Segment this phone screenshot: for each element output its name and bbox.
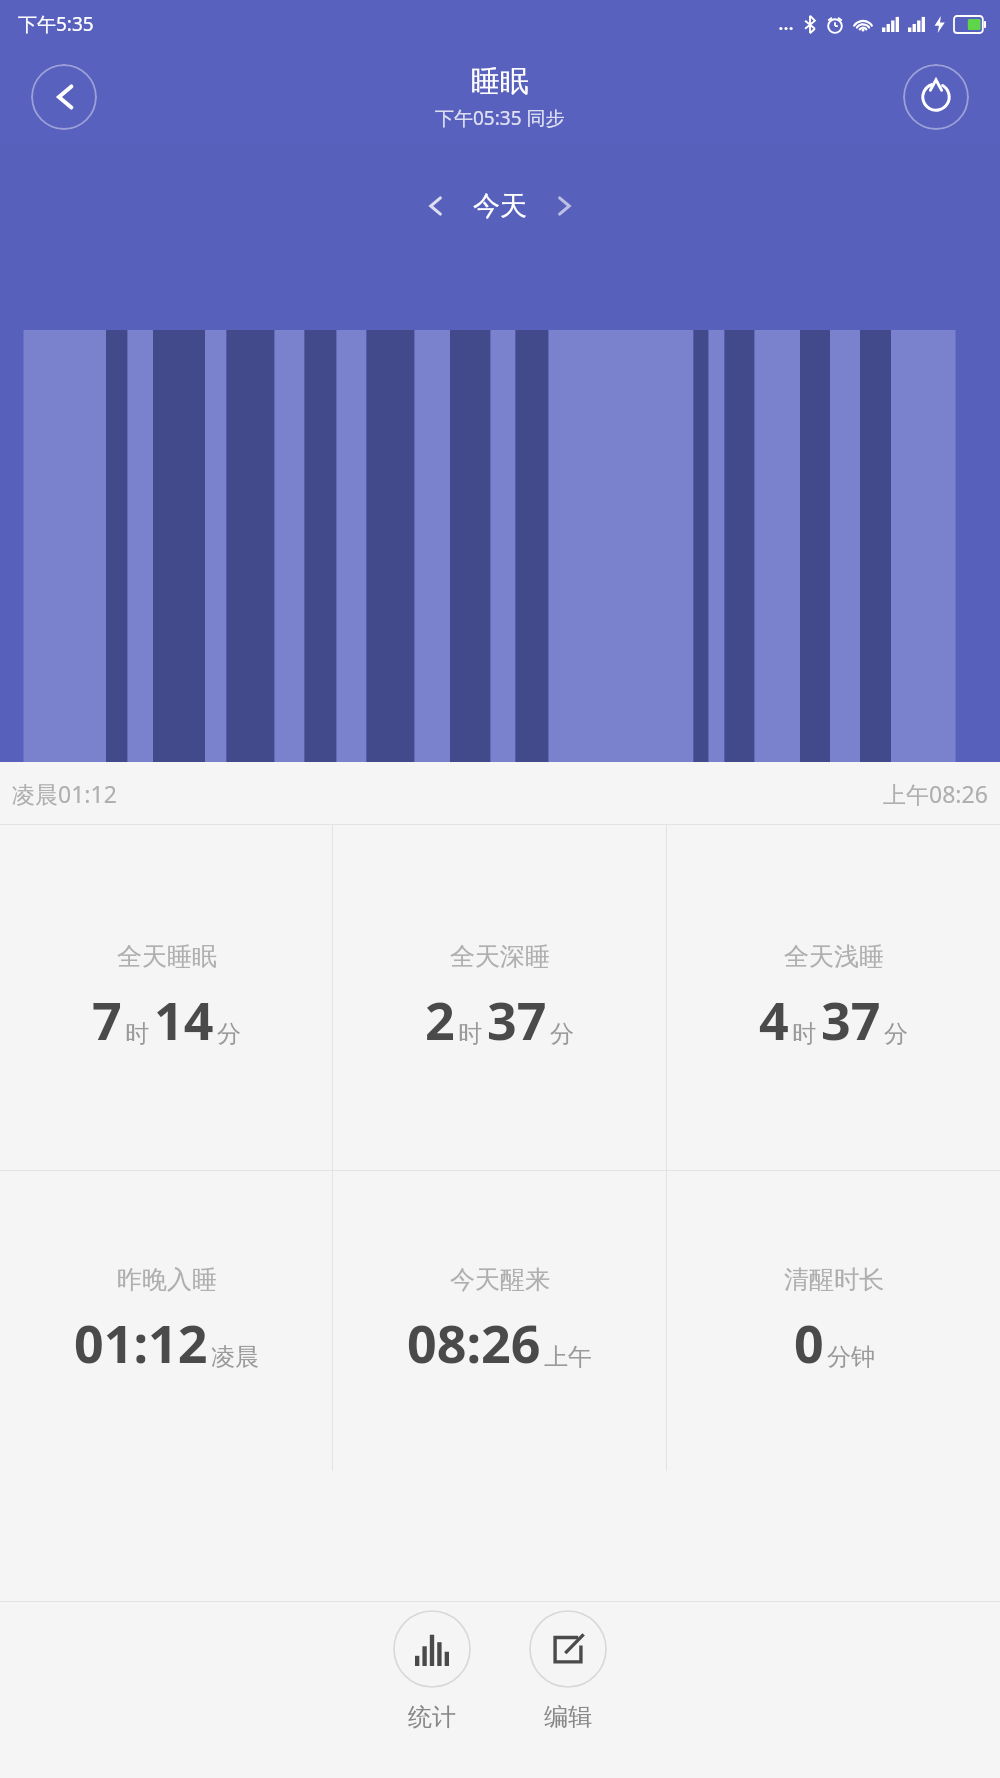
staticText: 时 (792, 1019, 816, 1049)
staticText: 上午 (544, 1342, 592, 1372)
staticText: 今天醒来 (450, 1264, 550, 1295)
staticText: 37 (821, 984, 881, 1055)
button[interactable]: Next day (541, 183, 587, 229)
staticText: 凌晨 (211, 1342, 259, 1372)
staticText: 今天 (473, 189, 527, 223)
button[interactable]: 今天醒来 (333, 1171, 666, 1471)
staticText: 全天深睡 (450, 941, 550, 972)
button[interactable]: Previous day (413, 183, 459, 229)
staticText: 睡眠 (471, 63, 529, 100)
button[interactable]: 昨晚入睡 (0, 1171, 332, 1471)
button[interactable]: 全天睡眠 (0, 825, 332, 1170)
staticText: 昨晚入睡 (117, 1264, 217, 1295)
staticText: 时 (125, 1019, 149, 1049)
button[interactable]: 今天 (459, 185, 541, 227)
staticText: 编辑 (544, 1702, 592, 1732)
staticText: 37 (487, 984, 547, 1055)
staticText: 统计 (408, 1702, 456, 1732)
staticText: 2 (425, 984, 455, 1055)
staticText: 凌晨01:12 (12, 778, 117, 809)
staticText: 分 (884, 1019, 908, 1049)
staticText: 时 (458, 1019, 482, 1049)
staticText: 4 (759, 984, 789, 1055)
staticText: 14 (154, 984, 214, 1055)
button[interactable]: Sync (903, 64, 969, 130)
staticText: 分钟 (827, 1342, 875, 1372)
staticText: 下午05:35 同步 (435, 105, 565, 131)
button[interactable]: 统计 (383, 1602, 481, 1740)
staticText: 分 (550, 1019, 574, 1049)
button[interactable]: 全天浅睡 (667, 825, 1000, 1170)
staticText: 分 (217, 1019, 241, 1049)
staticText: 0 (794, 1307, 824, 1378)
staticText: 全天睡眠 (117, 941, 217, 972)
button[interactable]: 清醒时长 (667, 1171, 1000, 1471)
button[interactable]: 编辑 (519, 1602, 617, 1740)
staticText: 7 (92, 984, 122, 1055)
staticText: 清醒时长 (784, 1264, 884, 1295)
staticText: 上午08:26 (883, 778, 988, 809)
staticText: 08:26 (407, 1307, 541, 1378)
button[interactable]: Back (31, 64, 97, 130)
staticText: 下午5:35 (18, 11, 94, 37)
button[interactable]: 全天深睡 (333, 825, 666, 1170)
staticText: 全天浅睡 (784, 941, 884, 972)
staticText: 01:12 (74, 1307, 208, 1378)
